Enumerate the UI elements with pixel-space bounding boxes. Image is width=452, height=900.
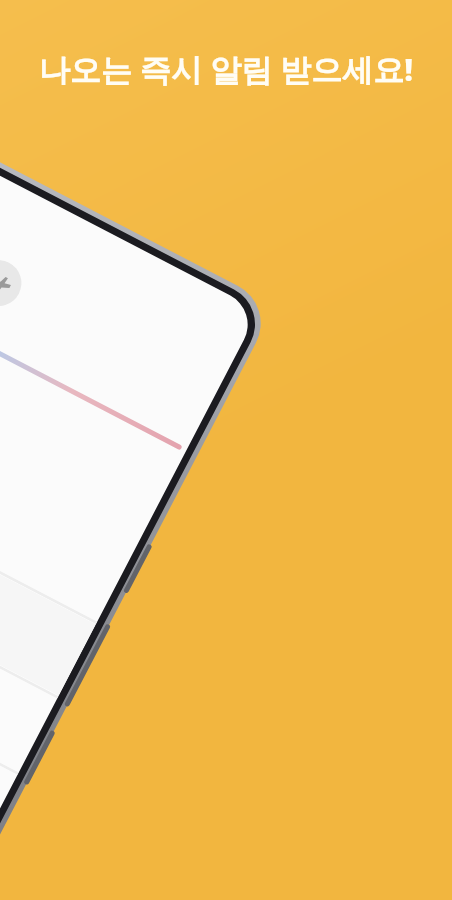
staticText: 나오는 즉시 알림 받으세요! bbox=[0, 48, 452, 90]
button[interactable]: 나오는 즉시 알림 받으세요! bbox=[0, 48, 452, 90]
button[interactable]: NFC bbox=[104, 244, 152, 292]
button[interactable]: Airplane mode bbox=[164, 262, 208, 306]
button[interactable]: Bluetooth bbox=[40, 206, 88, 254]
